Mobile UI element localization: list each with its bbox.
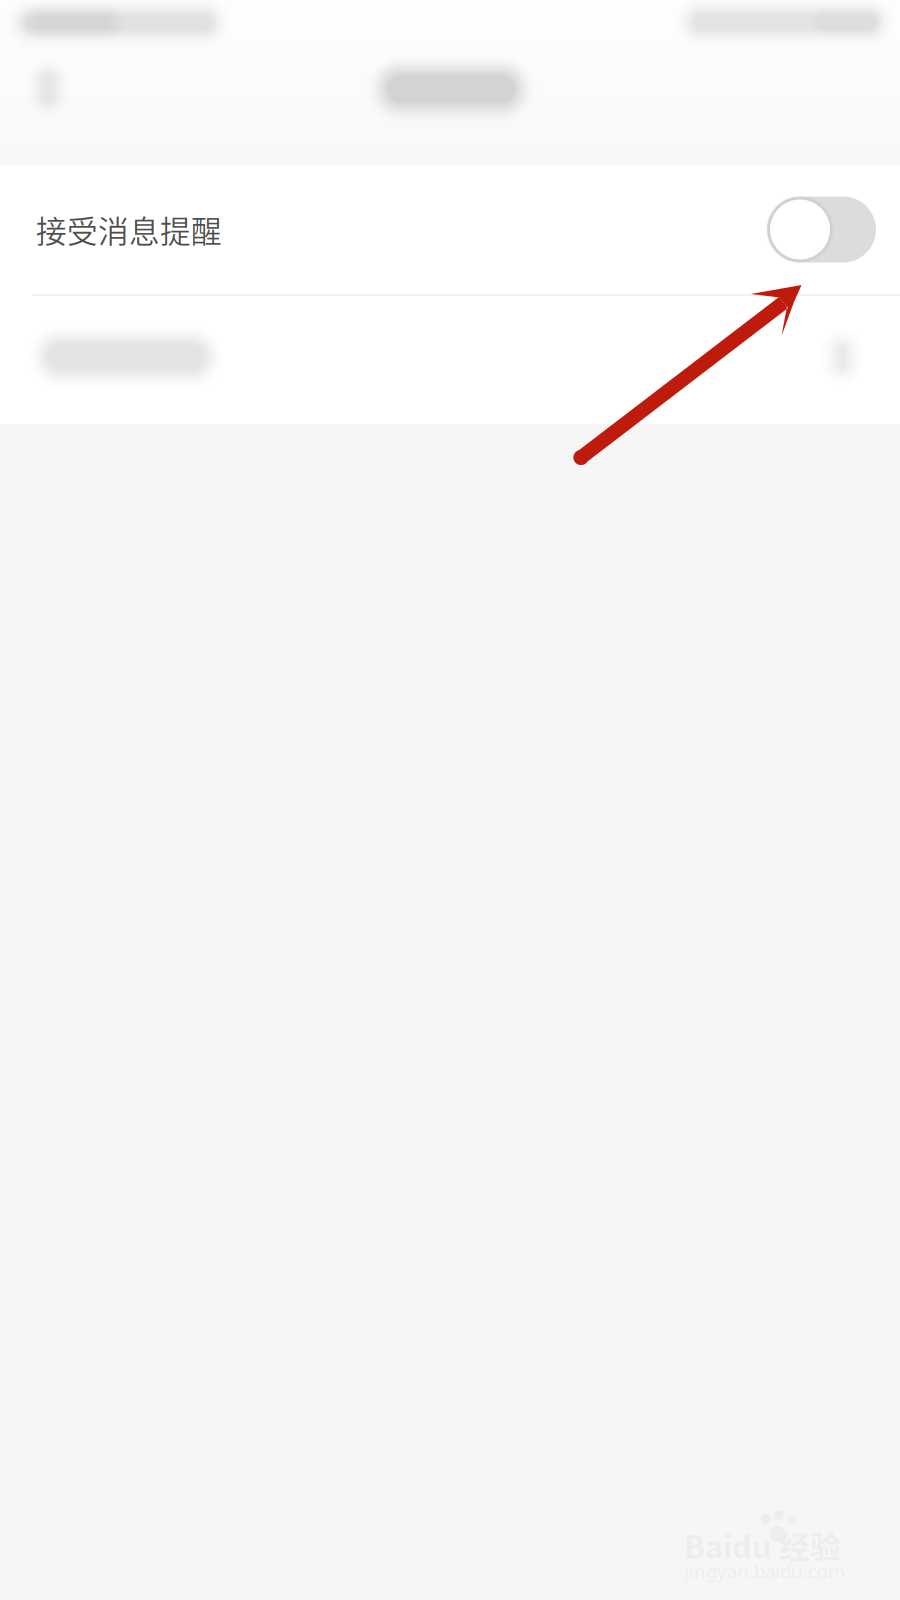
staticText: 接受消息提醒	[36, 207, 222, 252]
staticText: Baidu 经验	[684, 1523, 841, 1567]
button[interactable]: Settings row	[0, 296, 900, 424]
button[interactable]: 接受消息提醒	[0, 165, 900, 294]
